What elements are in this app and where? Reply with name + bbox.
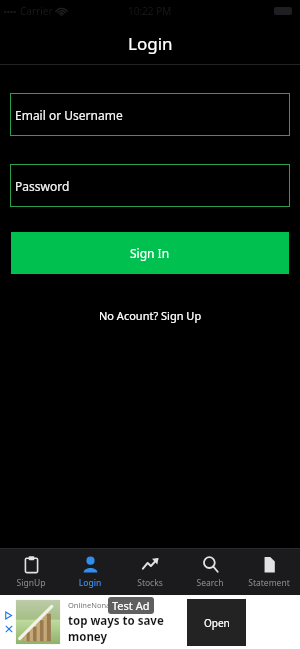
staticText: OnlineNona.com [68, 600, 128, 610]
staticText: Sign In [130, 245, 170, 261]
staticText: Test Ad [112, 598, 150, 613]
staticText: Email or Username [15, 107, 123, 123]
button[interactable]: Ad choices [3, 610, 14, 621]
staticText: Search [181, 577, 239, 589]
button[interactable]: Login [61, 552, 119, 592]
button[interactable]: Sign In [11, 232, 289, 274]
button[interactable]: Open [187, 599, 246, 646]
staticText: Login [61, 577, 119, 589]
button[interactable]: Statement [240, 552, 298, 592]
button[interactable]: Close ad [4, 624, 14, 634]
button[interactable]: SignUp [2, 552, 60, 592]
staticText: SignUp [2, 577, 60, 589]
staticText: No Acount? Sign Up [99, 308, 202, 323]
staticText: Open [204, 616, 230, 630]
staticText: Stocks [121, 577, 179, 589]
button[interactable]: Email or Username [10, 93, 290, 136]
staticText: Statement [240, 577, 298, 589]
staticText: Password [15, 178, 70, 194]
button[interactable]: Search [181, 552, 239, 592]
staticText: 10:22 PM [128, 4, 172, 18]
staticText: Login [128, 32, 173, 55]
staticText: Carrier [20, 4, 53, 18]
button[interactable]: Stocks [121, 552, 179, 592]
staticText: top ways to save money [68, 613, 187, 645]
button[interactable]: Password [10, 164, 290, 207]
button[interactable]: No Acount? Sign Up [93, 306, 208, 325]
